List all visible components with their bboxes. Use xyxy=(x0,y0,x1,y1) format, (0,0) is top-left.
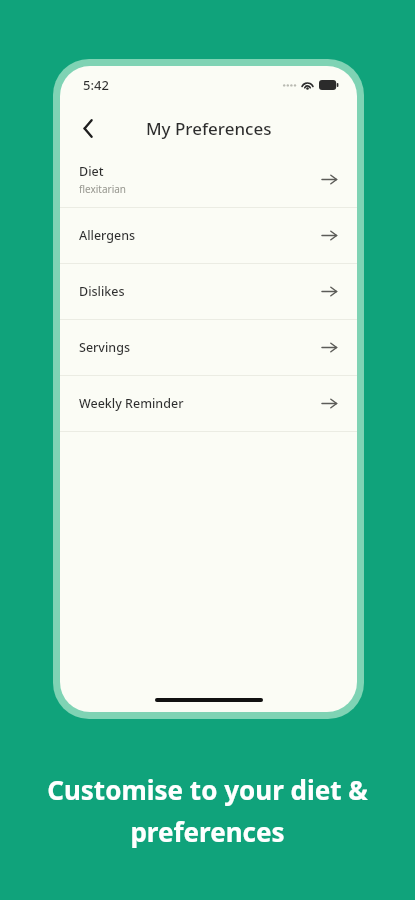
staticText: My Preferences xyxy=(146,117,272,140)
staticText: Diet xyxy=(79,163,104,180)
button[interactable]: Servings xyxy=(60,320,357,375)
button[interactable]: Allergens xyxy=(60,208,357,263)
staticText: preferences xyxy=(130,814,285,849)
button[interactable]: Dislikes xyxy=(60,264,357,319)
staticText: Dislikes xyxy=(79,283,125,300)
button[interactable]: Diet xyxy=(60,152,357,207)
staticText: 5:42 xyxy=(83,76,109,94)
staticText: Customise to your diet & xyxy=(47,772,368,807)
button[interactable]: Weekly Reminder xyxy=(60,376,357,431)
button[interactable]: Back xyxy=(68,108,108,148)
staticText: Weekly Reminder xyxy=(79,395,184,412)
staticText: flexitarian xyxy=(79,182,127,196)
staticText: Allergens xyxy=(79,227,136,244)
staticText: Servings xyxy=(79,339,130,356)
